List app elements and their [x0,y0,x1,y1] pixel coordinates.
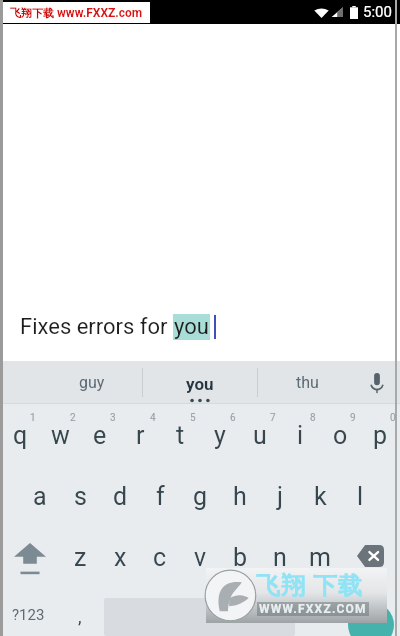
button[interactable]: 1 [0,404,40,465]
staticText: you [174,314,209,340]
staticText: u [253,421,267,450]
button[interactable]: Delete [340,526,400,586]
button[interactable]: n [260,526,300,586]
button[interactable]: 5 [160,404,200,465]
staticText: guy [79,373,105,392]
button[interactable]: Enter [348,602,394,636]
staticText: Fixes errors for [20,314,173,340]
button[interactable]: Space [104,598,295,636]
staticText: n [273,543,287,572]
staticText: www.FXXZ.com [57,6,143,20]
staticText: g [193,482,208,511]
button[interactable]: k [300,465,340,526]
staticText: o [333,421,348,450]
button[interactable]: x [100,526,140,586]
button[interactable]: v [180,526,220,586]
button[interactable]: s [60,465,100,526]
button[interactable]: c [140,526,180,586]
button[interactable]: d [100,465,140,526]
staticText: 0 [390,412,396,424]
button[interactable]: 4 [120,404,160,465]
staticText: 6 [230,412,236,424]
button[interactable]: you [143,361,257,404]
staticText: v [194,543,207,572]
button[interactable]: g [180,465,220,526]
button[interactable]: f [140,465,180,526]
button[interactable]: a [20,465,60,526]
staticText: thu [296,373,319,392]
button[interactable]: l [340,465,380,526]
staticText: e [93,421,107,450]
staticText: , [78,606,82,627]
staticText: 2 [70,412,76,424]
staticText: y [214,421,226,450]
staticText: t [176,421,185,450]
button[interactable]: ?123 [0,586,56,636]
staticText: ?123 [12,606,45,624]
button[interactable]: 9 [320,404,360,465]
staticText: k [314,482,327,511]
staticText: i [297,421,304,450]
staticText: z [74,543,87,572]
staticText: c [153,543,167,572]
staticText: 3 [110,412,116,424]
button[interactable]: 6 [200,404,240,465]
button[interactable]: . [295,586,341,636]
button[interactable]: , [56,586,104,636]
staticText: x [114,543,127,572]
button[interactable]: 8 [280,404,320,465]
staticText: m [309,543,331,572]
staticText: 5:00 [363,3,392,21]
staticText: 飞翔 下载 [256,571,363,601]
staticText: 5 [190,412,196,424]
staticText: 7 [270,412,276,424]
button[interactable]: Shift [0,526,60,586]
staticText: s [74,482,87,511]
button[interactable]: 2 [40,404,80,465]
button[interactable]: j [260,465,300,526]
button[interactable]: 0 [360,404,400,465]
staticText: w [51,421,70,450]
button[interactable]: z [60,526,100,586]
staticText: 飞翔下载 [10,6,54,20]
staticText: a [33,482,47,511]
staticText: r [136,421,145,450]
staticText: l [357,482,364,511]
staticText: d [113,482,128,511]
button[interactable]: b [220,526,260,586]
button[interactable]: 7 [240,404,280,465]
staticText: j [277,482,283,511]
staticText: p [373,421,388,450]
staticText: 1 [30,412,36,424]
button[interactable]: h [220,465,260,526]
staticText: h [233,482,247,511]
staticText: 4 [150,412,156,424]
staticText: . [316,606,321,627]
staticText: q [13,421,28,450]
staticText: 8 [310,412,316,424]
button[interactable]: m [300,526,340,586]
staticText: WWW.FXXZ.COM [259,602,367,616]
staticText: 9 [350,412,356,424]
button[interactable]: guy [2,361,142,404]
button[interactable]: Voice input [357,361,397,404]
staticText: you [186,374,214,394]
button[interactable]: thu [258,361,360,404]
staticText: f [156,482,165,511]
button[interactable]: 3 [80,404,120,465]
staticText: b [233,543,248,572]
